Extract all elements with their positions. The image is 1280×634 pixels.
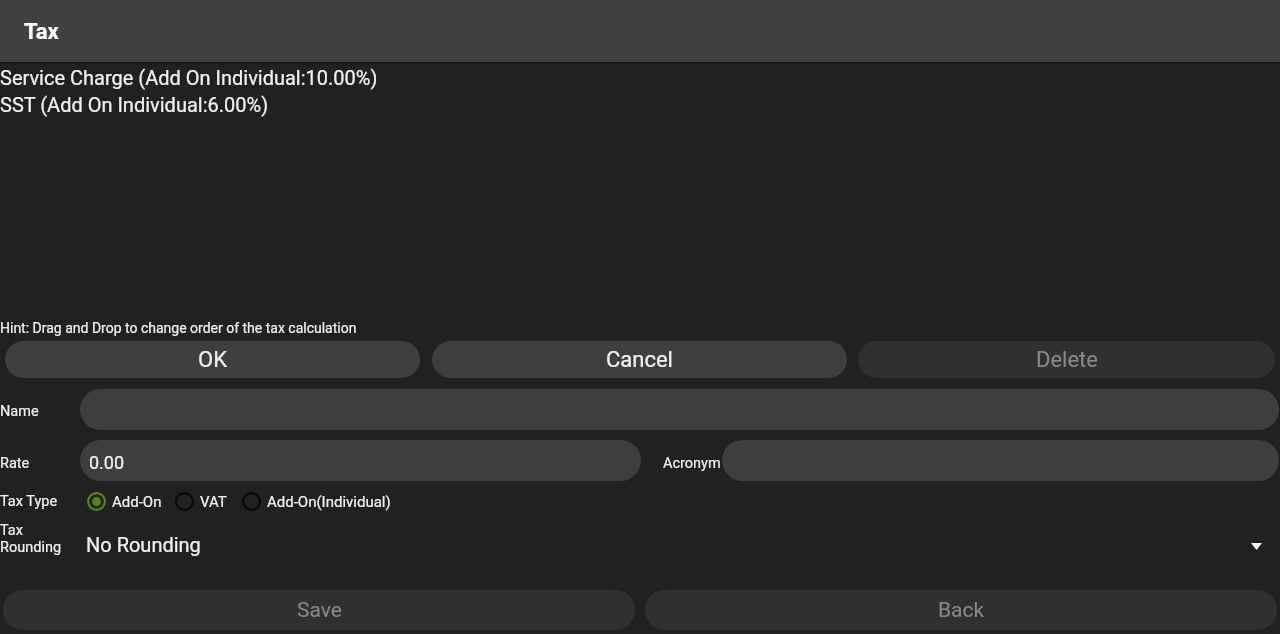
- button[interactable]: Delete: [858, 341, 1275, 378]
- button[interactable]: Add-On(Individual): [242, 492, 391, 511]
- staticText: Add-On: [112, 493, 162, 511]
- staticText: No Rounding: [86, 533, 201, 556]
- staticText: VAT: [200, 493, 227, 511]
- staticText: Delete: [1036, 347, 1098, 373]
- button[interactable]: Cancel: [432, 341, 847, 378]
- staticText: SST (Add On Individual:6.00%): [0, 93, 269, 116]
- button[interactable]: [722, 440, 1279, 481]
- staticText: 0.00: [89, 452, 125, 473]
- button[interactable]: OK: [5, 341, 420, 378]
- staticText: OK: [198, 347, 227, 373]
- button[interactable]: VAT: [175, 492, 227, 511]
- button[interactable]: Back: [645, 590, 1277, 630]
- staticText: Rounding: [0, 539, 62, 556]
- button[interactable]: No Rounding: [86, 521, 1280, 567]
- other: Open dropdown: [1251, 543, 1262, 550]
- staticText: Tax Type: [0, 493, 58, 510]
- button[interactable]: SST (Add On Individual:6.00%): [0, 91, 1280, 118]
- staticText: Tax: [24, 19, 59, 45]
- staticText: Name: [0, 403, 39, 420]
- button[interactable]: Save: [3, 590, 635, 630]
- button[interactable]: Service Charge (Add On Individual:10.00%…: [0, 64, 1280, 91]
- staticText: Service Charge (Add On Individual:10.00%…: [0, 66, 378, 89]
- staticText: Acronym: [663, 455, 721, 472]
- staticText: Cancel: [606, 347, 673, 373]
- staticText: Rate: [0, 455, 30, 472]
- staticText: Add-On(Individual): [267, 493, 391, 511]
- button[interactable]: 0.00: [80, 440, 641, 481]
- button[interactable]: Add-On: [87, 492, 162, 511]
- staticText: Hint: Drag and Drop to change order of t…: [0, 320, 357, 336]
- staticText: Back: [938, 598, 985, 623]
- staticText: Save: [297, 598, 342, 623]
- staticText: Tax: [0, 522, 23, 539]
